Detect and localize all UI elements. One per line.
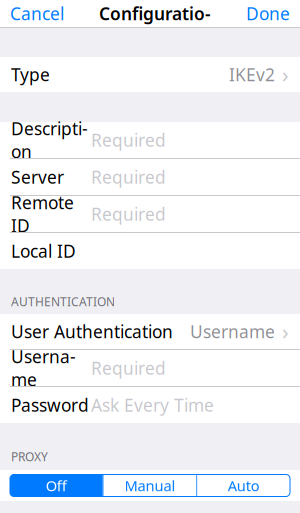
- button[interactable]: Server: [0, 159, 300, 195]
- button[interactable]: Auto: [197, 474, 290, 496]
- staticText: AUTHENTICATION: [11, 293, 115, 309]
- staticText: Username: [190, 320, 275, 343]
- staticText: Username: [11, 345, 76, 391]
- staticText: Ask Every Time: [91, 393, 214, 416]
- button[interactable]: Username: [0, 350, 300, 386]
- staticText: Required: [91, 202, 166, 225]
- staticText: Auto: [228, 476, 260, 495]
- staticText: Description: [11, 117, 88, 163]
- staticText: User Authentication: [11, 320, 173, 343]
- staticText: Cancel: [10, 2, 64, 25]
- button[interactable]: Off: [10, 474, 103, 496]
- staticText: Add Configuration: [99, 0, 211, 48]
- staticText: Done: [246, 2, 290, 25]
- staticText: Required: [91, 356, 166, 379]
- button[interactable]: Type: [0, 57, 300, 92]
- button[interactable]: Manual: [104, 474, 196, 496]
- button[interactable]: User Authentication: [0, 314, 300, 349]
- staticText: ›: [282, 60, 289, 89]
- button[interactable]: Local ID: [0, 233, 300, 269]
- staticText: ›: [282, 317, 289, 346]
- staticText: Local ID: [11, 239, 76, 262]
- button[interactable]: Remote ID: [0, 196, 300, 232]
- button[interactable]: Cancel: [0, 0, 74, 31]
- button[interactable]: Password: [0, 387, 300, 423]
- staticText: Manual: [124, 476, 175, 495]
- button[interactable]: Description: [0, 122, 300, 158]
- staticText: Type: [11, 63, 50, 86]
- staticText: Server: [11, 165, 64, 188]
- staticText: Off: [46, 476, 67, 495]
- button[interactable]: Done: [236, 0, 300, 31]
- staticText: Required: [91, 165, 166, 188]
- staticText: Password: [11, 393, 89, 416]
- staticText: IKEv2: [229, 63, 275, 86]
- staticText: Remote ID: [11, 191, 74, 237]
- staticText: Required: [91, 128, 166, 151]
- staticText: PROXY: [11, 448, 48, 464]
